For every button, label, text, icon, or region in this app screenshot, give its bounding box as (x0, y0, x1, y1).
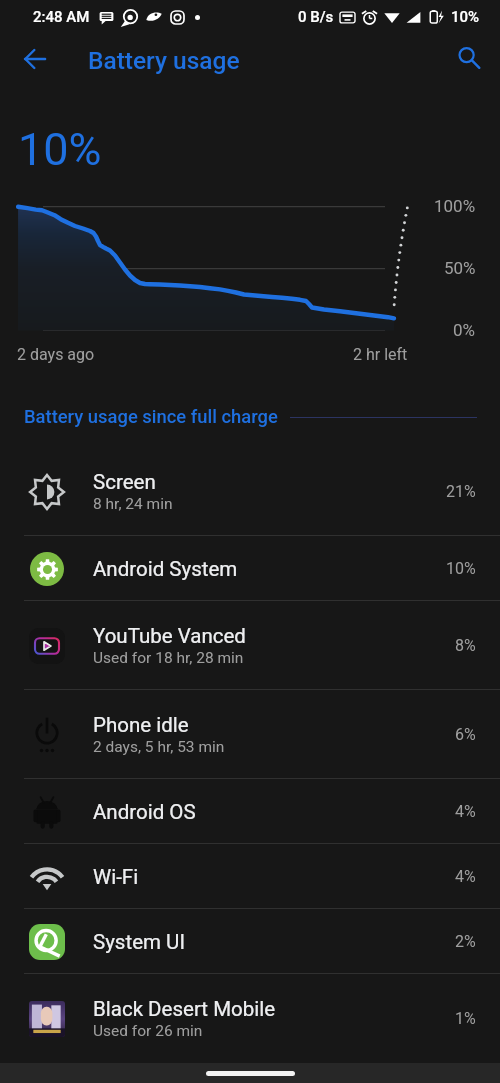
staticText: Used for 18 hr, 28 min (93, 649, 244, 667)
staticText: Wi-Fi (93, 865, 139, 889)
staticText: 50% (444, 258, 476, 278)
staticText: 10% (446, 559, 476, 578)
staticText: Battery usage since full charge (24, 406, 278, 428)
staticText: 2 days ago (17, 345, 95, 364)
staticText: Battery usage (88, 46, 240, 75)
staticText: System UI (93, 930, 185, 954)
button[interactable]: Back (12, 36, 58, 82)
button[interactable]: Android OS (0, 779, 500, 844)
staticText: 2 days, 5 hr, 53 min (93, 738, 225, 756)
button[interactable]: System UI (0, 909, 500, 974)
staticText: 21% (446, 482, 476, 501)
staticText: 100% (434, 196, 476, 216)
staticText: 0 B/s (298, 8, 334, 26)
button[interactable]: Search (447, 36, 491, 80)
staticText: Screen (93, 470, 156, 494)
button[interactable]: Phone idle (0, 690, 500, 779)
staticText: Black Desert Mobile (93, 997, 276, 1021)
staticText: 6% (455, 725, 476, 744)
button[interactable]: Wi-Fi (0, 844, 500, 909)
staticText: 2% (455, 932, 476, 951)
staticText: 10% (451, 8, 480, 26)
button[interactable]: YouTube Vanced (0, 601, 500, 690)
staticText: 8% (455, 636, 476, 655)
staticText: Android System (93, 557, 238, 581)
staticText: 4% (455, 867, 476, 886)
staticText: Used for 26 min (93, 1022, 203, 1040)
staticText: Phone idle (93, 713, 189, 737)
staticText: 10% (18, 123, 102, 176)
staticText: Android OS (93, 800, 196, 824)
staticText: 2 hr left (353, 345, 408, 364)
staticText: 0% (453, 320, 476, 340)
button[interactable]: Black Desert Mobile (0, 974, 500, 1063)
button[interactable]: Android System (0, 536, 500, 601)
staticText: 1% (455, 1009, 476, 1028)
staticText: YouTube Vanced (93, 624, 246, 648)
staticText: 8 hr, 24 min (93, 495, 173, 513)
button[interactable]: Screen (0, 447, 500, 536)
staticText: 4% (455, 802, 476, 821)
staticText: 2:48 AM (33, 8, 90, 26)
